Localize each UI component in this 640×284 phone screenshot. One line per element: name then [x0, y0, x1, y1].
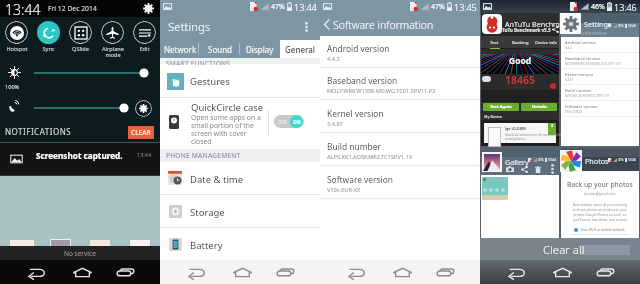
staticText: Kernel version: [565, 72, 594, 78]
staticText: Ranking: [512, 40, 529, 45]
button[interactable]: Display: [240, 40, 280, 58]
staticText: 13:46: [614, 1, 637, 13]
button[interactable]: Home: [68, 260, 96, 284]
button[interactable]: Sound settings: [135, 100, 152, 117]
button[interactable]: Airplane mode: [96, 21, 128, 59]
staticText: Good: [509, 55, 532, 67]
button[interactable]: Delete: [531, 163, 545, 175]
staticText: PHONE MANAGEMENT: [166, 151, 241, 160]
staticText: Settings: [584, 19, 612, 29]
staticText: QSlide: [72, 45, 89, 53]
button[interactable]: Sound: [200, 40, 240, 58]
staticText: GoodLab welcome to the world of high end…: [505, 133, 577, 141]
button[interactable]: Edit: [128, 21, 160, 59]
staticText: 47%: [618, 158, 624, 162]
staticText: Test: [490, 40, 499, 45]
button[interactable]: Settings: [560, 13, 612, 34]
staticText: 13:36: [628, 158, 637, 162]
staticText: 13:44: [5, 0, 41, 17]
staticText: QuickCircle case: [191, 101, 264, 114]
button[interactable]: Recent apps: [591, 260, 619, 284]
staticText: 100%: [5, 83, 20, 91]
staticText: Hotspot: [6, 45, 28, 53]
button[interactable]: Clear all: [480, 238, 640, 260]
button[interactable]: Home: [548, 260, 576, 284]
staticText: ALPS.KK1.AOSP.MP2.TC1SP.V1.19: [327, 153, 412, 161]
button[interactable]: [160, 195, 320, 228]
staticText: Build number: [565, 88, 592, 94]
staticText: Baseband version: [327, 75, 398, 86]
button[interactable]: Gallery: [482, 152, 529, 172]
button[interactable]: Home: [388, 260, 416, 284]
button[interactable]: [320, 68, 480, 100]
button[interactable]: Back: [22, 260, 50, 284]
button[interactable]: General: [280, 40, 320, 58]
staticText: Open some apps on a small portion of the…: [191, 113, 261, 146]
button[interactable]: Share: [517, 163, 531, 175]
button[interactable]: [0, 143, 160, 175]
button[interactable]: More options: [299, 20, 313, 34]
staticText: Storage: [190, 206, 225, 219]
button[interactable]: Back: [502, 260, 530, 284]
staticText: Battery: [190, 239, 223, 252]
button[interactable]: OFF: [274, 115, 304, 128]
button[interactable]: Hotspot: [0, 21, 32, 59]
button[interactable]: [160, 64, 320, 97]
staticText: 46%: [591, 2, 605, 12]
staticText: Photos: [585, 156, 609, 166]
button[interactable]: Recent apps: [111, 260, 139, 284]
staticText: Display: [246, 44, 274, 55]
button[interactable]: 47%: [561, 148, 639, 238]
button[interactable]: Test Again: [483, 103, 519, 111]
staticText: MOLY.WR8.W1338.MD.WG.TC01.SP.V11.P2: [327, 87, 436, 95]
staticText: Software version: [327, 174, 394, 185]
button[interactable]: TuTu Benchmark v5.5: [481, 13, 559, 146]
button[interactable]: Recent apps: [431, 260, 459, 284]
staticText: CLEAR: [131, 128, 151, 137]
staticText: NOTIFICATIONS: [5, 126, 72, 137]
button[interactable]: Back: [182, 260, 210, 284]
button[interactable]: QSlide: [64, 21, 96, 59]
staticText: Edit: [139, 45, 150, 53]
button[interactable]: Recent apps: [271, 260, 299, 284]
staticText: 3.4.67: [565, 78, 574, 82]
staticText: 47%: [271, 2, 285, 12]
staticText: Test Again: [490, 104, 512, 110]
staticText: Airplane mode: [102, 45, 124, 59]
button[interactable]: Details: [521, 103, 557, 111]
staticText: Network: [164, 44, 197, 55]
staticText: Over Wi-Fi or mobile network: [581, 228, 625, 232]
staticText: Details: [532, 104, 547, 110]
button[interactable]: Sync: [32, 21, 64, 59]
staticText: 13:46: [628, 24, 637, 28]
button[interactable]: [320, 36, 480, 68]
button[interactable]: [160, 228, 320, 261]
staticText: 13:45: [454, 1, 477, 13]
button[interactable]: [160, 98, 320, 149]
staticText: Sync: [42, 45, 55, 53]
button[interactable]: Settings: [142, 2, 155, 15]
staticText: 13:44: [137, 151, 152, 158]
button[interactable]: Network: [160, 40, 200, 58]
button[interactable]: [320, 167, 480, 199]
staticText: OFF: [278, 119, 287, 125]
button[interactable]: Back: [342, 260, 370, 284]
staticText: ON: [293, 119, 301, 125]
button[interactable]: More options: [545, 163, 559, 175]
staticText: Auto backup saves all your existing and …: [570, 202, 630, 222]
staticText: jmstraz@gmail.com: [584, 191, 616, 196]
button[interactable]: AnTuTu Benchmark: [482, 14, 571, 34]
button[interactable]: [160, 162, 320, 195]
button[interactable]: 47%: [481, 148, 559, 238]
staticText: Back up your photos: [567, 180, 633, 189]
button[interactable]: Photos: [560, 150, 609, 172]
button[interactable]: [320, 134, 480, 166]
button[interactable]: CLEAR: [128, 126, 154, 139]
button[interactable]: 47%: [561, 13, 639, 146]
button[interactable]: Back: [320, 13, 480, 36]
button[interactable]: [320, 101, 480, 133]
button[interactable]: Camera: [503, 163, 517, 175]
button[interactable]: Home: [228, 260, 256, 284]
staticText: 47%: [538, 158, 544, 162]
staticText: Benchmark Score: [509, 86, 533, 88]
